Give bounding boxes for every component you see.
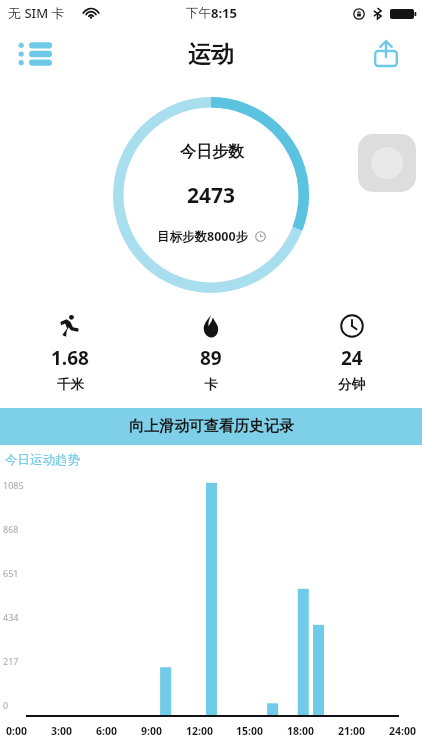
staticText: 0 bbox=[3, 699, 9, 711]
staticText: 12:00 bbox=[186, 724, 213, 738]
button[interactable]: Device bbox=[358, 134, 416, 192]
staticText: 21:00 bbox=[338, 724, 365, 738]
button[interactable]: Menu bbox=[14, 32, 58, 76]
staticText: 868 bbox=[3, 523, 19, 535]
staticText: 下午 bbox=[186, 5, 211, 21]
staticText: 6:00 bbox=[96, 724, 117, 738]
staticText: 今日步数 bbox=[180, 142, 244, 162]
button[interactable]: 向上滑动可查看历史记录 bbox=[0, 408, 422, 445]
staticText: 9:00 bbox=[141, 724, 162, 738]
staticText: 目标步数8000步 bbox=[157, 228, 249, 245]
staticText: 1.68 bbox=[51, 345, 89, 371]
staticText: 无 SIM 卡 bbox=[8, 4, 65, 22]
staticText: 217 bbox=[3, 655, 19, 667]
staticText: 18:00 bbox=[287, 724, 314, 738]
staticText: 8:15 bbox=[211, 4, 237, 22]
staticText: 2473 bbox=[187, 181, 236, 210]
staticText: 24:00 bbox=[389, 724, 416, 738]
staticText: 0:00 bbox=[6, 724, 27, 738]
staticText: 434 bbox=[3, 611, 19, 623]
staticText: 卡 bbox=[204, 376, 218, 393]
staticText: 向上滑动可查看历史记录 bbox=[129, 417, 294, 436]
staticText: 千米 bbox=[57, 376, 84, 393]
button[interactable]: 24 bbox=[281, 310, 422, 397]
staticText: 24 bbox=[341, 345, 363, 371]
staticText: 89 bbox=[200, 345, 222, 371]
staticText: 651 bbox=[3, 567, 19, 579]
button[interactable]: 89 bbox=[140, 310, 281, 397]
staticText: 1085 bbox=[3, 479, 24, 491]
staticText: 运动 bbox=[188, 40, 234, 69]
button[interactable]: 1.68 bbox=[0, 310, 140, 397]
staticText: 3:00 bbox=[51, 724, 72, 738]
staticText: 今日运动趋势 bbox=[5, 452, 80, 468]
button[interactable]: Share bbox=[364, 32, 408, 76]
staticText: 分钟 bbox=[338, 376, 365, 393]
staticText: 15:00 bbox=[236, 724, 263, 738]
